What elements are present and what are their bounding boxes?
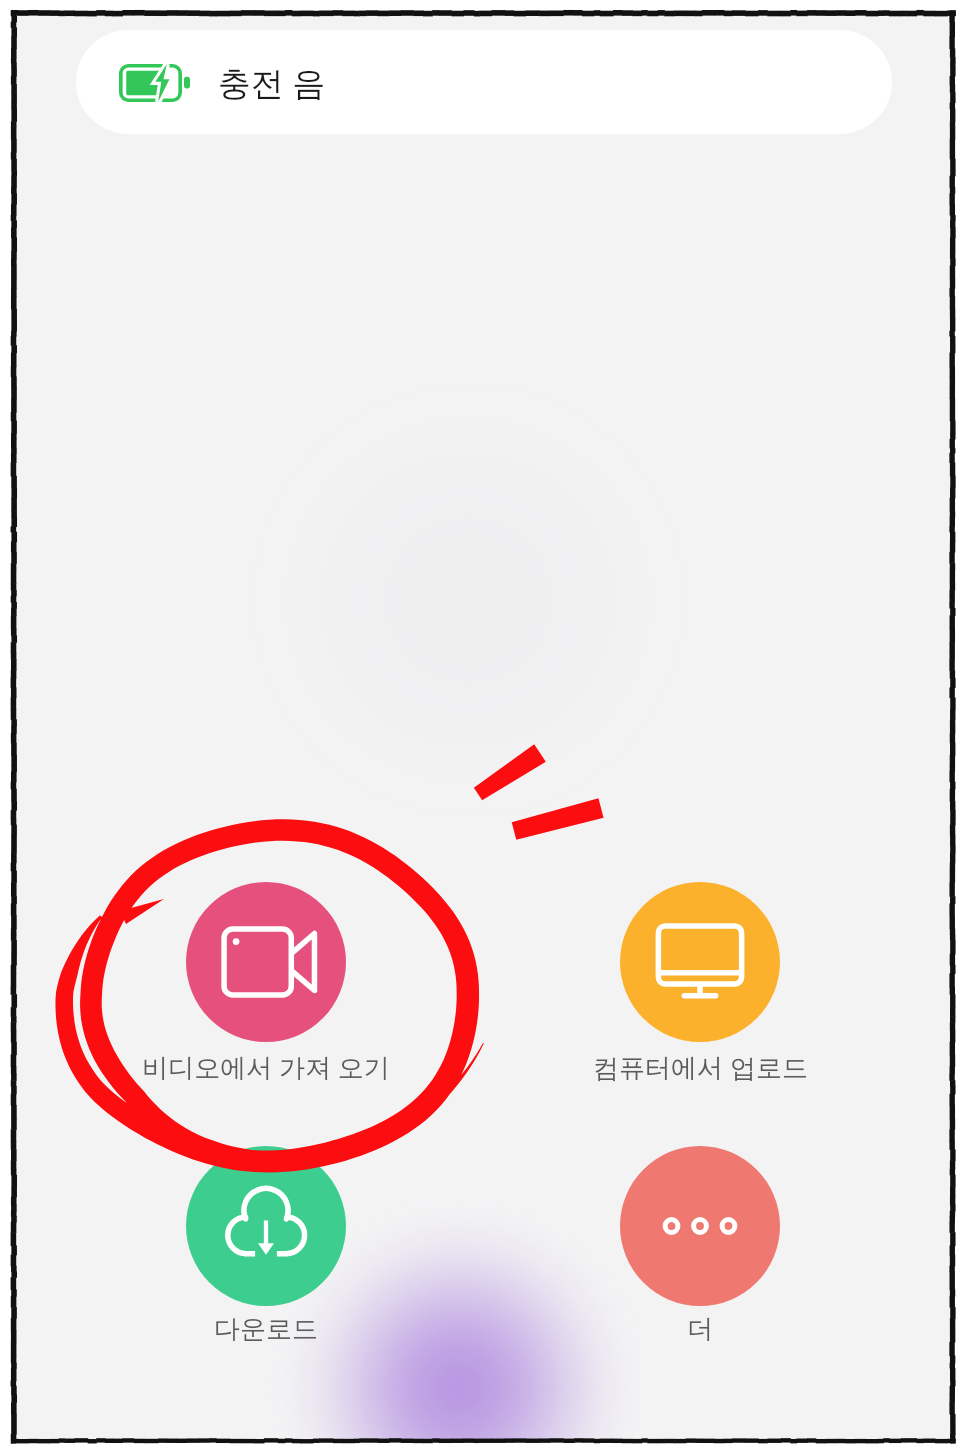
button[interactable]: Download xyxy=(106,1146,426,1346)
button[interactable]: 충전 음 xyxy=(76,30,892,134)
button[interactable]: More xyxy=(540,1146,860,1346)
button[interactable]: Import from video xyxy=(106,882,426,1085)
staticText: 컴퓨터에서 업로드 xyxy=(593,1049,808,1085)
staticText: 더 xyxy=(687,1313,713,1346)
staticText: 충전 음 xyxy=(218,60,326,105)
staticText: 다운로드 xyxy=(214,1313,318,1346)
staticText: 비디오에서 가져 오기 xyxy=(142,1049,390,1085)
button[interactable]: Upload from computer xyxy=(540,882,860,1085)
